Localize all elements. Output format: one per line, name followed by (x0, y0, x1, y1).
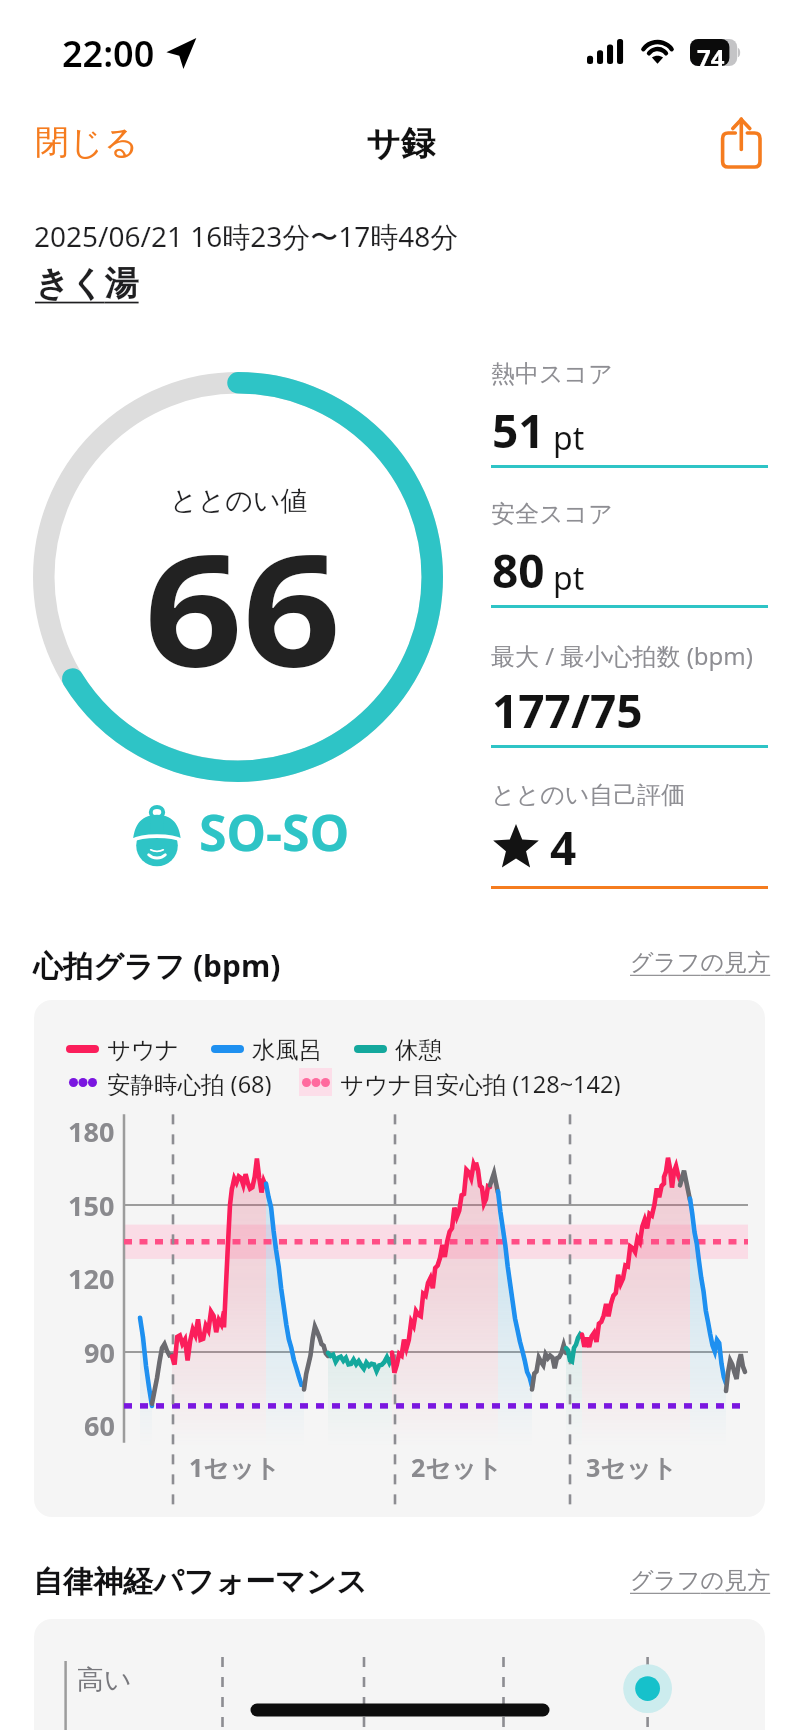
staticText: 安静時心拍 (68) (107, 1068, 272, 1096)
button[interactable]: Share (712, 112, 770, 176)
staticText: SO-SO (199, 798, 350, 866)
button[interactable] (491, 493, 768, 611)
staticText: 90 (84, 1334, 115, 1371)
button[interactable] (491, 633, 768, 751)
button[interactable] (491, 774, 768, 892)
button[interactable]: きく湯 (35, 262, 139, 305)
staticText: 熱中スコア (491, 359, 613, 389)
staticText: ととのい自己評価 (491, 780, 686, 810)
staticText: 22:00 (62, 29, 155, 78)
staticText: ととのい値 (170, 484, 308, 518)
staticText: 2セット (411, 1450, 503, 1484)
staticText: 水風呂 (252, 1035, 323, 1063)
staticText: グラフの見方 (630, 948, 771, 977)
staticText: 66 (144, 500, 342, 711)
staticText: 最大 / 最小心拍数 (bpm) (491, 639, 754, 672)
staticText: 60 (84, 1407, 115, 1444)
staticText: サ録 (366, 122, 435, 165)
staticText: 安全スコア (491, 499, 613, 529)
button[interactable]: グラフの見方 (630, 948, 771, 977)
staticText: 51 (492, 399, 545, 462)
staticText: pt (553, 416, 585, 460)
staticText: 4 (550, 816, 577, 879)
staticText: 74 (697, 41, 725, 74)
button[interactable]: グラフの見方 (630, 1566, 771, 1595)
staticText: グラフの見方 (630, 1566, 771, 1595)
staticText: 180 (68, 1113, 115, 1150)
staticText: 高い (77, 1663, 132, 1697)
button[interactable] (491, 353, 768, 471)
staticText: pt (553, 556, 585, 600)
staticText: 177/75 (492, 679, 643, 742)
staticText: きく湯 (35, 262, 139, 305)
staticText: 閉じる (35, 121, 139, 164)
staticText: サウナ (107, 1035, 180, 1063)
staticText: 休憩 (395, 1035, 442, 1063)
staticText: 80 (492, 539, 545, 602)
staticText: 2025/06/21 16時23分〜17時48分 (34, 217, 459, 255)
staticText: 自律神経パフォーマンス (33, 1563, 368, 1601)
staticText: 150 (68, 1187, 115, 1224)
staticText: 3セット (586, 1450, 678, 1484)
button[interactable]: 閉じる (13, 111, 161, 174)
staticText: 心拍グラフ (bpm) (33, 945, 281, 986)
staticText: 120 (68, 1260, 115, 1297)
staticText: サウナ目安心拍 (128~142) (340, 1068, 621, 1096)
staticText: 1セット (189, 1450, 281, 1484)
